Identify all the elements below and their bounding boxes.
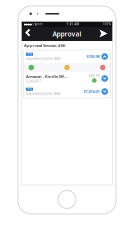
staticText: Approval Session #66	[24, 43, 65, 48]
button[interactable]: PO	[23, 50, 110, 63]
button[interactable]: Send	[98, 28, 110, 40]
staticText: 9:45 AM	[66, 22, 78, 26]
button[interactable]: PO	[23, 85, 110, 98]
staticText: Amazon - Kindle (W...	[26, 74, 67, 79]
button[interactable]: Back	[23, 28, 35, 40]
staticText: 100%	[102, 22, 110, 26]
staticText: $105.98	[87, 54, 100, 59]
staticText: requested by John Smith	[26, 92, 61, 95]
staticText: PO	[27, 87, 31, 91]
staticText: PO	[27, 52, 31, 56]
button[interactable]: Amazon - Kindle (W...	[23, 72, 110, 85]
staticText: 12/4/2017	[26, 80, 42, 83]
staticText: $89.99	[89, 74, 100, 78]
staticText: requested by John Smith	[26, 57, 61, 60]
staticText: ●●●●○ Sprint	[23, 22, 42, 26]
staticText: $1,814.07	[84, 89, 100, 94]
staticText: Approval	[52, 30, 81, 38]
